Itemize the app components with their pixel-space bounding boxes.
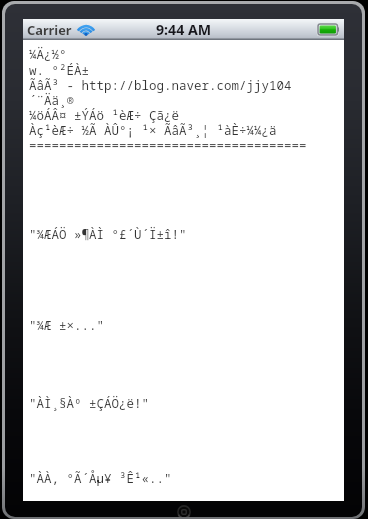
staticText: "ÀÀ, °Ã´Åµ¥ ³Ê¹«.."	[29, 470, 172, 487]
staticText: "ÀÌ¸§Àº ±ÇÁÖ¿ë!"	[29, 395, 150, 412]
staticText: 9:44 AM	[156, 20, 212, 39]
button[interactable]: Home	[177, 505, 191, 517]
staticText: ¼Ä¿½° w. °²ÉÀ± ÃâÃ³ - http://blog.naver.…	[29, 46, 307, 153]
staticText: "¾Æ ±×..."	[29, 317, 105, 334]
staticText: Carrier	[27, 21, 72, 38]
staticText: "¾ÆÁÖ »¶ÀÌ °£´Ù´Ï±î!"	[29, 226, 187, 243]
